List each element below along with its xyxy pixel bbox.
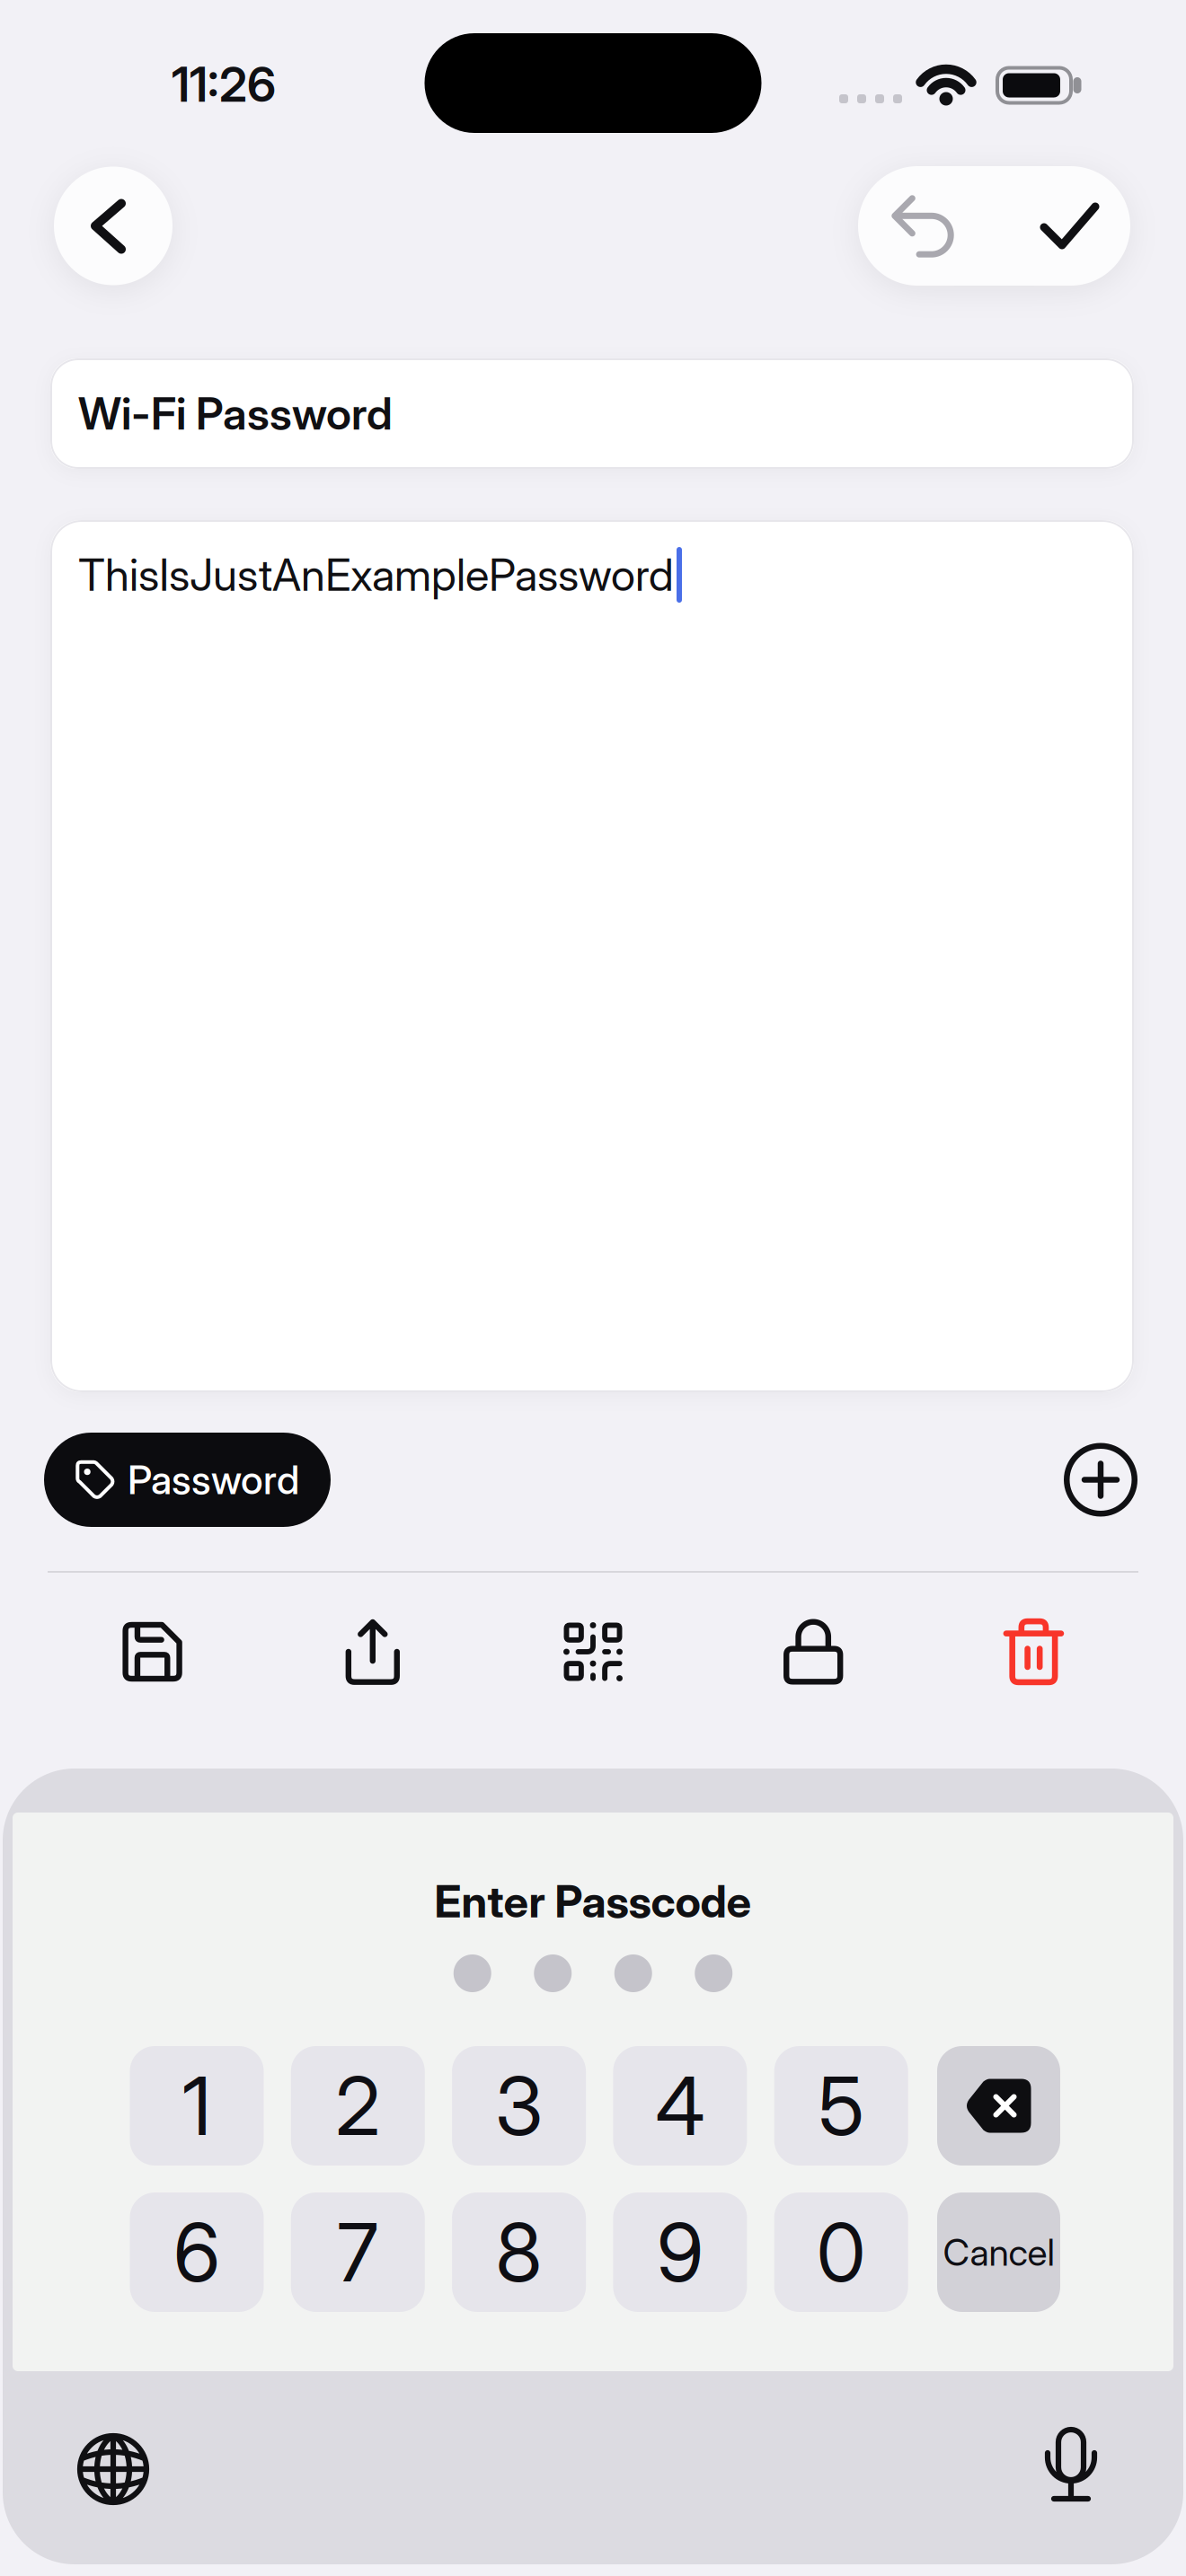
staticText: 2 bbox=[335, 2057, 380, 2154]
button[interactable]: 7 bbox=[291, 2192, 425, 2312]
button[interactable]: 9 bbox=[613, 2192, 747, 2312]
button[interactable]: Password bbox=[44, 1433, 331, 1527]
staticText: ThisIsJustAnExamplePassword bbox=[78, 548, 674, 602]
staticText: 3 bbox=[495, 2057, 543, 2154]
staticText: Wi-Fi Password bbox=[78, 387, 393, 440]
button[interactable]: 2 bbox=[291, 2046, 425, 2166]
button[interactable]: Save bbox=[42, 1616, 263, 1688]
staticText: Cancel bbox=[943, 2230, 1054, 2274]
button[interactable]: Back bbox=[54, 167, 173, 285]
button[interactable]: Undo bbox=[893, 197, 952, 256]
staticText: 6 bbox=[173, 2204, 220, 2301]
staticText: 8 bbox=[496, 2204, 542, 2301]
button[interactable]: QR code bbox=[483, 1616, 703, 1687]
button[interactable]: Delete bbox=[923, 1615, 1144, 1688]
staticText: Enter Passcode bbox=[434, 1875, 752, 1928]
button[interactable]: 4 bbox=[613, 2046, 747, 2166]
button[interactable]: 8 bbox=[452, 2192, 586, 2312]
button[interactable]: Add tag bbox=[1064, 1443, 1137, 1517]
button[interactable]: Share bbox=[263, 1615, 483, 1688]
staticText: 11:26 bbox=[172, 56, 276, 113]
button[interactable]: 1 bbox=[130, 2046, 264, 2166]
button[interactable]: Backspace bbox=[937, 2046, 1060, 2166]
button[interactable]: 6 bbox=[130, 2192, 264, 2312]
button[interactable]: Cancel bbox=[937, 2192, 1060, 2312]
staticText: 7 bbox=[337, 2204, 379, 2301]
button[interactable]: 0 bbox=[774, 2192, 908, 2312]
staticText: 1 bbox=[182, 2057, 211, 2154]
button[interactable]: 3 bbox=[452, 2046, 586, 2166]
staticText: 9 bbox=[657, 2204, 703, 2301]
staticText: Password bbox=[128, 1456, 299, 1504]
staticText: 4 bbox=[655, 2057, 705, 2154]
staticText: 0 bbox=[816, 2204, 866, 2301]
button[interactable]: Dictation bbox=[1043, 2427, 1099, 2506]
button[interactable]: 5 bbox=[774, 2046, 908, 2166]
button[interactable]: Lock bbox=[703, 1616, 923, 1688]
button[interactable]: Switch keyboard bbox=[77, 2433, 149, 2505]
button[interactable]: Confirm bbox=[1040, 196, 1099, 255]
staticText: 5 bbox=[818, 2057, 864, 2154]
